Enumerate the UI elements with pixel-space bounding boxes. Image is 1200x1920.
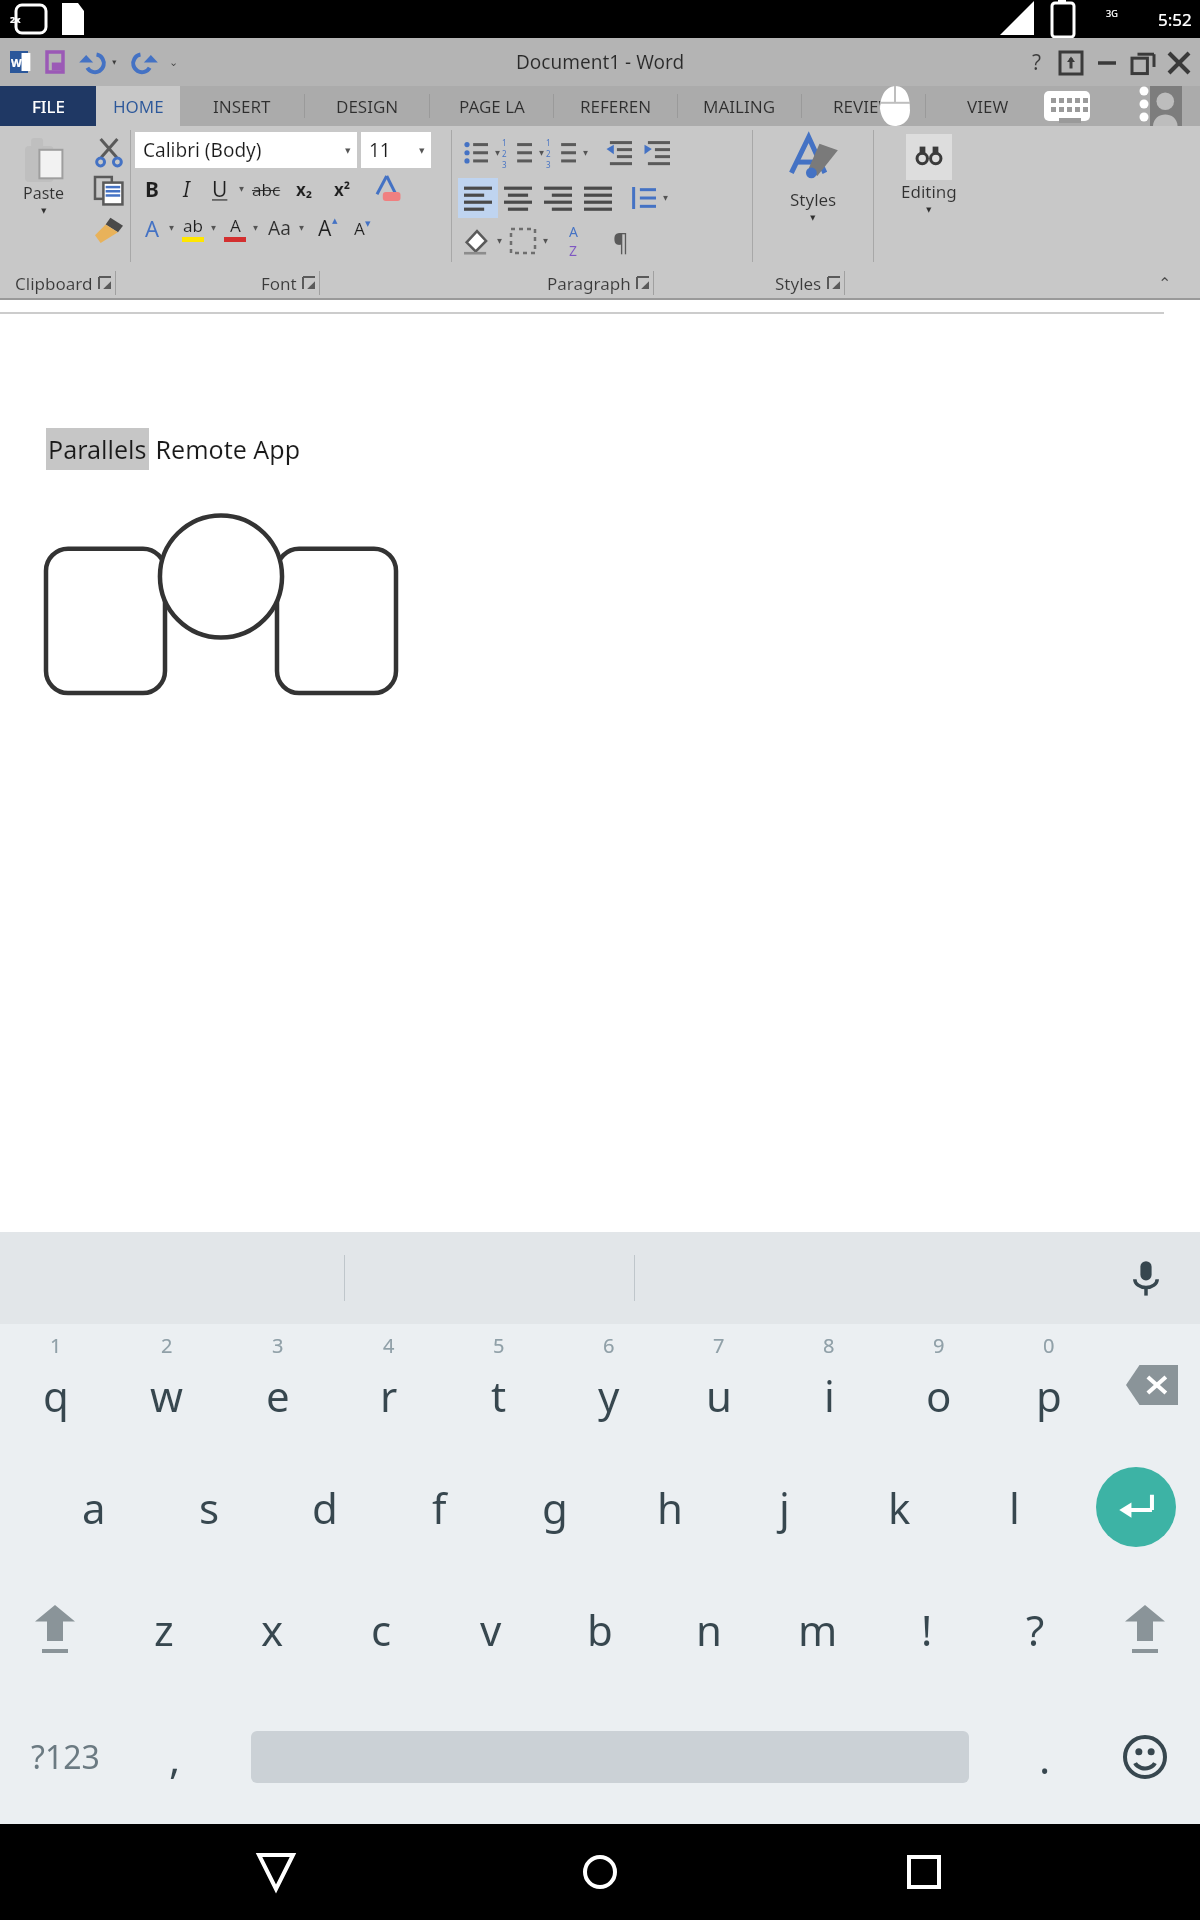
button[interactable]: Cut bbox=[90, 134, 128, 172]
button[interactable]: HOME bbox=[96, 86, 180, 126]
button[interactable]: Show formatting marks bbox=[602, 222, 640, 260]
button[interactable]: 0 bbox=[994, 1324, 1104, 1446]
button[interactable]: b bbox=[545, 1568, 654, 1690]
button[interactable]: Line spacing bbox=[624, 179, 662, 217]
button[interactable]: 5 bbox=[444, 1324, 554, 1446]
button[interactable]: 1 bbox=[0, 1324, 111, 1446]
button[interactable]: U bbox=[203, 172, 237, 206]
button[interactable]: Back bbox=[228, 1824, 324, 1920]
button[interactable]: Sort bbox=[554, 222, 592, 260]
button[interactable]: j bbox=[727, 1446, 842, 1568]
button[interactable]: m bbox=[763, 1568, 872, 1690]
button[interactable]: 7 bbox=[664, 1324, 774, 1446]
button[interactable]: Close bbox=[1168, 52, 1190, 74]
staticText: h bbox=[657, 1479, 683, 1536]
button[interactable]: f bbox=[382, 1446, 497, 1568]
button[interactable]: a bbox=[36, 1446, 152, 1568]
button[interactable]: Multilevel list bbox=[546, 135, 582, 171]
button[interactable]: ?123 bbox=[0, 1690, 130, 1824]
button[interactable]: Text effects bbox=[135, 211, 169, 245]
button[interactable]: Highlight bbox=[175, 210, 211, 246]
button[interactable]: 6 bbox=[554, 1324, 664, 1446]
button[interactable]: Align left bbox=[458, 178, 498, 218]
button[interactable]: MAILING bbox=[678, 86, 801, 126]
button[interactable]: 2 bbox=[111, 1324, 222, 1446]
button[interactable]: Minimize bbox=[1096, 52, 1118, 74]
button[interactable]: I bbox=[169, 172, 203, 206]
button[interactable]: Enter bbox=[1072, 1446, 1200, 1568]
button[interactable]: Align right bbox=[538, 178, 578, 218]
button[interactable]: g bbox=[497, 1446, 612, 1568]
button[interactable]: n bbox=[654, 1568, 763, 1690]
button[interactable]: Styles bbox=[753, 126, 873, 266]
button[interactable]: Redo bbox=[129, 49, 155, 75]
button[interactable]: Editing bbox=[874, 126, 984, 266]
button[interactable]: REVIEW bbox=[802, 86, 925, 126]
button[interactable]: abc bbox=[247, 172, 285, 206]
button[interactable]: Justify bbox=[578, 178, 618, 218]
button[interactable]: k bbox=[842, 1446, 957, 1568]
button[interactable]: Aa bbox=[259, 208, 299, 248]
button[interactable]: Restore bbox=[1132, 52, 1154, 74]
button[interactable]: Calibri (Body) bbox=[135, 132, 357, 168]
button[interactable]: B bbox=[135, 172, 169, 206]
staticText: 7 bbox=[713, 1332, 725, 1359]
button[interactable]: Account bbox=[1138, 86, 1182, 126]
button[interactable]: 4 bbox=[333, 1324, 444, 1446]
button[interactable]: PAGE LA bbox=[430, 86, 553, 126]
button[interactable]: INSERT bbox=[180, 86, 304, 126]
button[interactable]: 9 bbox=[884, 1324, 994, 1446]
button[interactable]: x bbox=[218, 1568, 327, 1690]
button[interactable]: x² bbox=[323, 172, 361, 206]
button[interactable]: 8 bbox=[774, 1324, 884, 1446]
button[interactable]: Recents bbox=[876, 1824, 972, 1920]
button[interactable]: Shift bbox=[0, 1568, 110, 1690]
button[interactable]: Center bbox=[498, 178, 538, 218]
button[interactable]: Increase indent bbox=[638, 134, 676, 172]
button[interactable]: . bbox=[1000, 1690, 1090, 1824]
button[interactable]: v bbox=[436, 1568, 545, 1690]
button[interactable]: Font color bbox=[217, 210, 253, 246]
button[interactable]: Clear formatting bbox=[371, 172, 405, 206]
button[interactable]: Home bbox=[552, 1824, 648, 1920]
button[interactable]: Voice input bbox=[1126, 1258, 1166, 1298]
button[interactable]: Save bbox=[44, 49, 70, 75]
button[interactable]: Format painter bbox=[90, 210, 128, 248]
button[interactable]: Toggle keyboard bbox=[1044, 91, 1090, 121]
button[interactable]: 11 bbox=[361, 132, 431, 168]
button[interactable]: z bbox=[110, 1568, 218, 1690]
button[interactable]: h bbox=[612, 1446, 727, 1568]
button[interactable]: x₂ bbox=[285, 172, 323, 206]
button[interactable]: , bbox=[130, 1690, 220, 1824]
staticText: B bbox=[145, 175, 159, 204]
button[interactable]: l bbox=[957, 1446, 1072, 1568]
button[interactable]: Undo bbox=[82, 49, 108, 75]
button[interactable]: ? bbox=[981, 1568, 1090, 1690]
button[interactable]: Space bbox=[220, 1690, 1000, 1824]
button[interactable]: Decrease indent bbox=[600, 134, 638, 172]
button[interactable]: REFEREN bbox=[554, 86, 677, 126]
button[interactable]: 3 bbox=[222, 1324, 333, 1446]
button[interactable]: Word bbox=[8, 49, 34, 75]
button[interactable]: d bbox=[267, 1446, 382, 1568]
button[interactable]: DESIGN bbox=[305, 86, 429, 126]
button[interactable]: VIEW bbox=[926, 86, 1049, 126]
button[interactable]: Borders bbox=[504, 222, 542, 260]
button[interactable]: Backspace bbox=[1104, 1324, 1200, 1446]
button[interactable]: Shrink font bbox=[345, 211, 379, 245]
button[interactable]: ? bbox=[1024, 48, 1050, 77]
button[interactable]: Shading bbox=[458, 222, 496, 260]
button[interactable]: Grow font bbox=[311, 211, 345, 245]
button[interactable]: c bbox=[327, 1568, 436, 1690]
button[interactable]: Copy bbox=[90, 172, 128, 210]
button[interactable]: Numbering bbox=[502, 135, 538, 171]
button[interactable]: Bullets bbox=[458, 135, 494, 171]
button[interactable]: ! bbox=[872, 1568, 981, 1690]
button[interactable]: Shift bbox=[1090, 1568, 1200, 1690]
button[interactable]: Emoji bbox=[1090, 1690, 1200, 1824]
staticText: x₂ bbox=[296, 178, 313, 201]
button[interactable]: Ribbon display options bbox=[1060, 52, 1082, 74]
button[interactable]: s bbox=[152, 1446, 267, 1568]
button[interactable]: FILE bbox=[0, 86, 96, 126]
button[interactable]: Paste bbox=[0, 126, 88, 266]
